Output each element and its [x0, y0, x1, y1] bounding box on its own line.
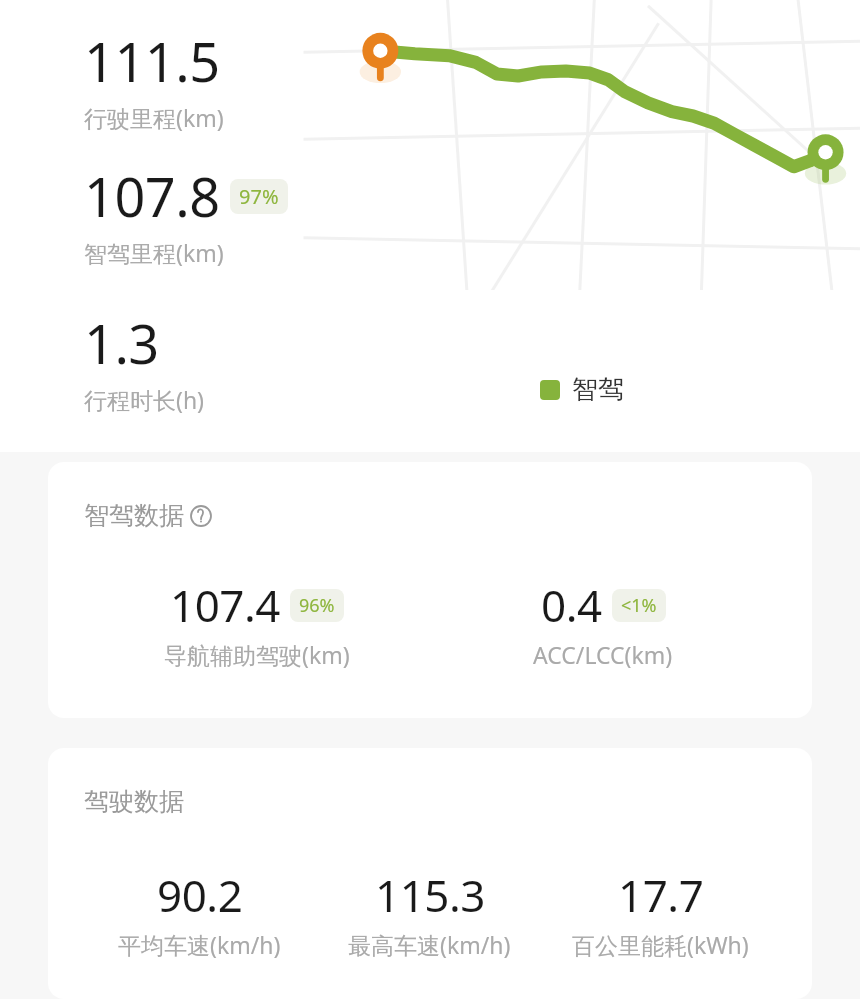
- staticText: 行驶里程(km): [84, 102, 224, 133]
- staticText: 导航辅助驾驶(km): [164, 639, 350, 670]
- staticText: 115.3: [375, 865, 485, 925]
- staticText: ACC/LCC(km): [533, 639, 673, 670]
- staticText: 96%: [299, 593, 335, 618]
- button[interactable]: Help about smart driving data: [190, 505, 212, 527]
- staticText: 0.4: [541, 575, 602, 635]
- staticText: 百公里能耗(kWh): [572, 929, 749, 960]
- staticText: 平均车速(km/h): [118, 929, 281, 960]
- staticText: 107.4: [170, 575, 280, 635]
- staticText: 智驾里程(km): [84, 237, 224, 268]
- staticText: 111.5: [84, 24, 220, 98]
- staticText: 107.8: [84, 159, 220, 233]
- staticText: 行程时长(h): [84, 384, 205, 415]
- staticText: 1.3: [84, 306, 159, 380]
- staticText: 97%: [239, 183, 279, 210]
- staticText: 90.2: [157, 865, 243, 925]
- staticText: 驾驶数据: [84, 786, 184, 817]
- staticText: 智驾: [572, 373, 624, 406]
- staticText: 最高车速(km/h): [348, 929, 511, 960]
- staticText: 17.7: [618, 865, 704, 925]
- staticText: 智驾数据: [84, 500, 184, 531]
- staticText: <1%: [621, 593, 657, 618]
- button[interactable]: 智驾数据: [48, 462, 812, 718]
- button[interactable]: 驾驶数据: [48, 748, 812, 999]
